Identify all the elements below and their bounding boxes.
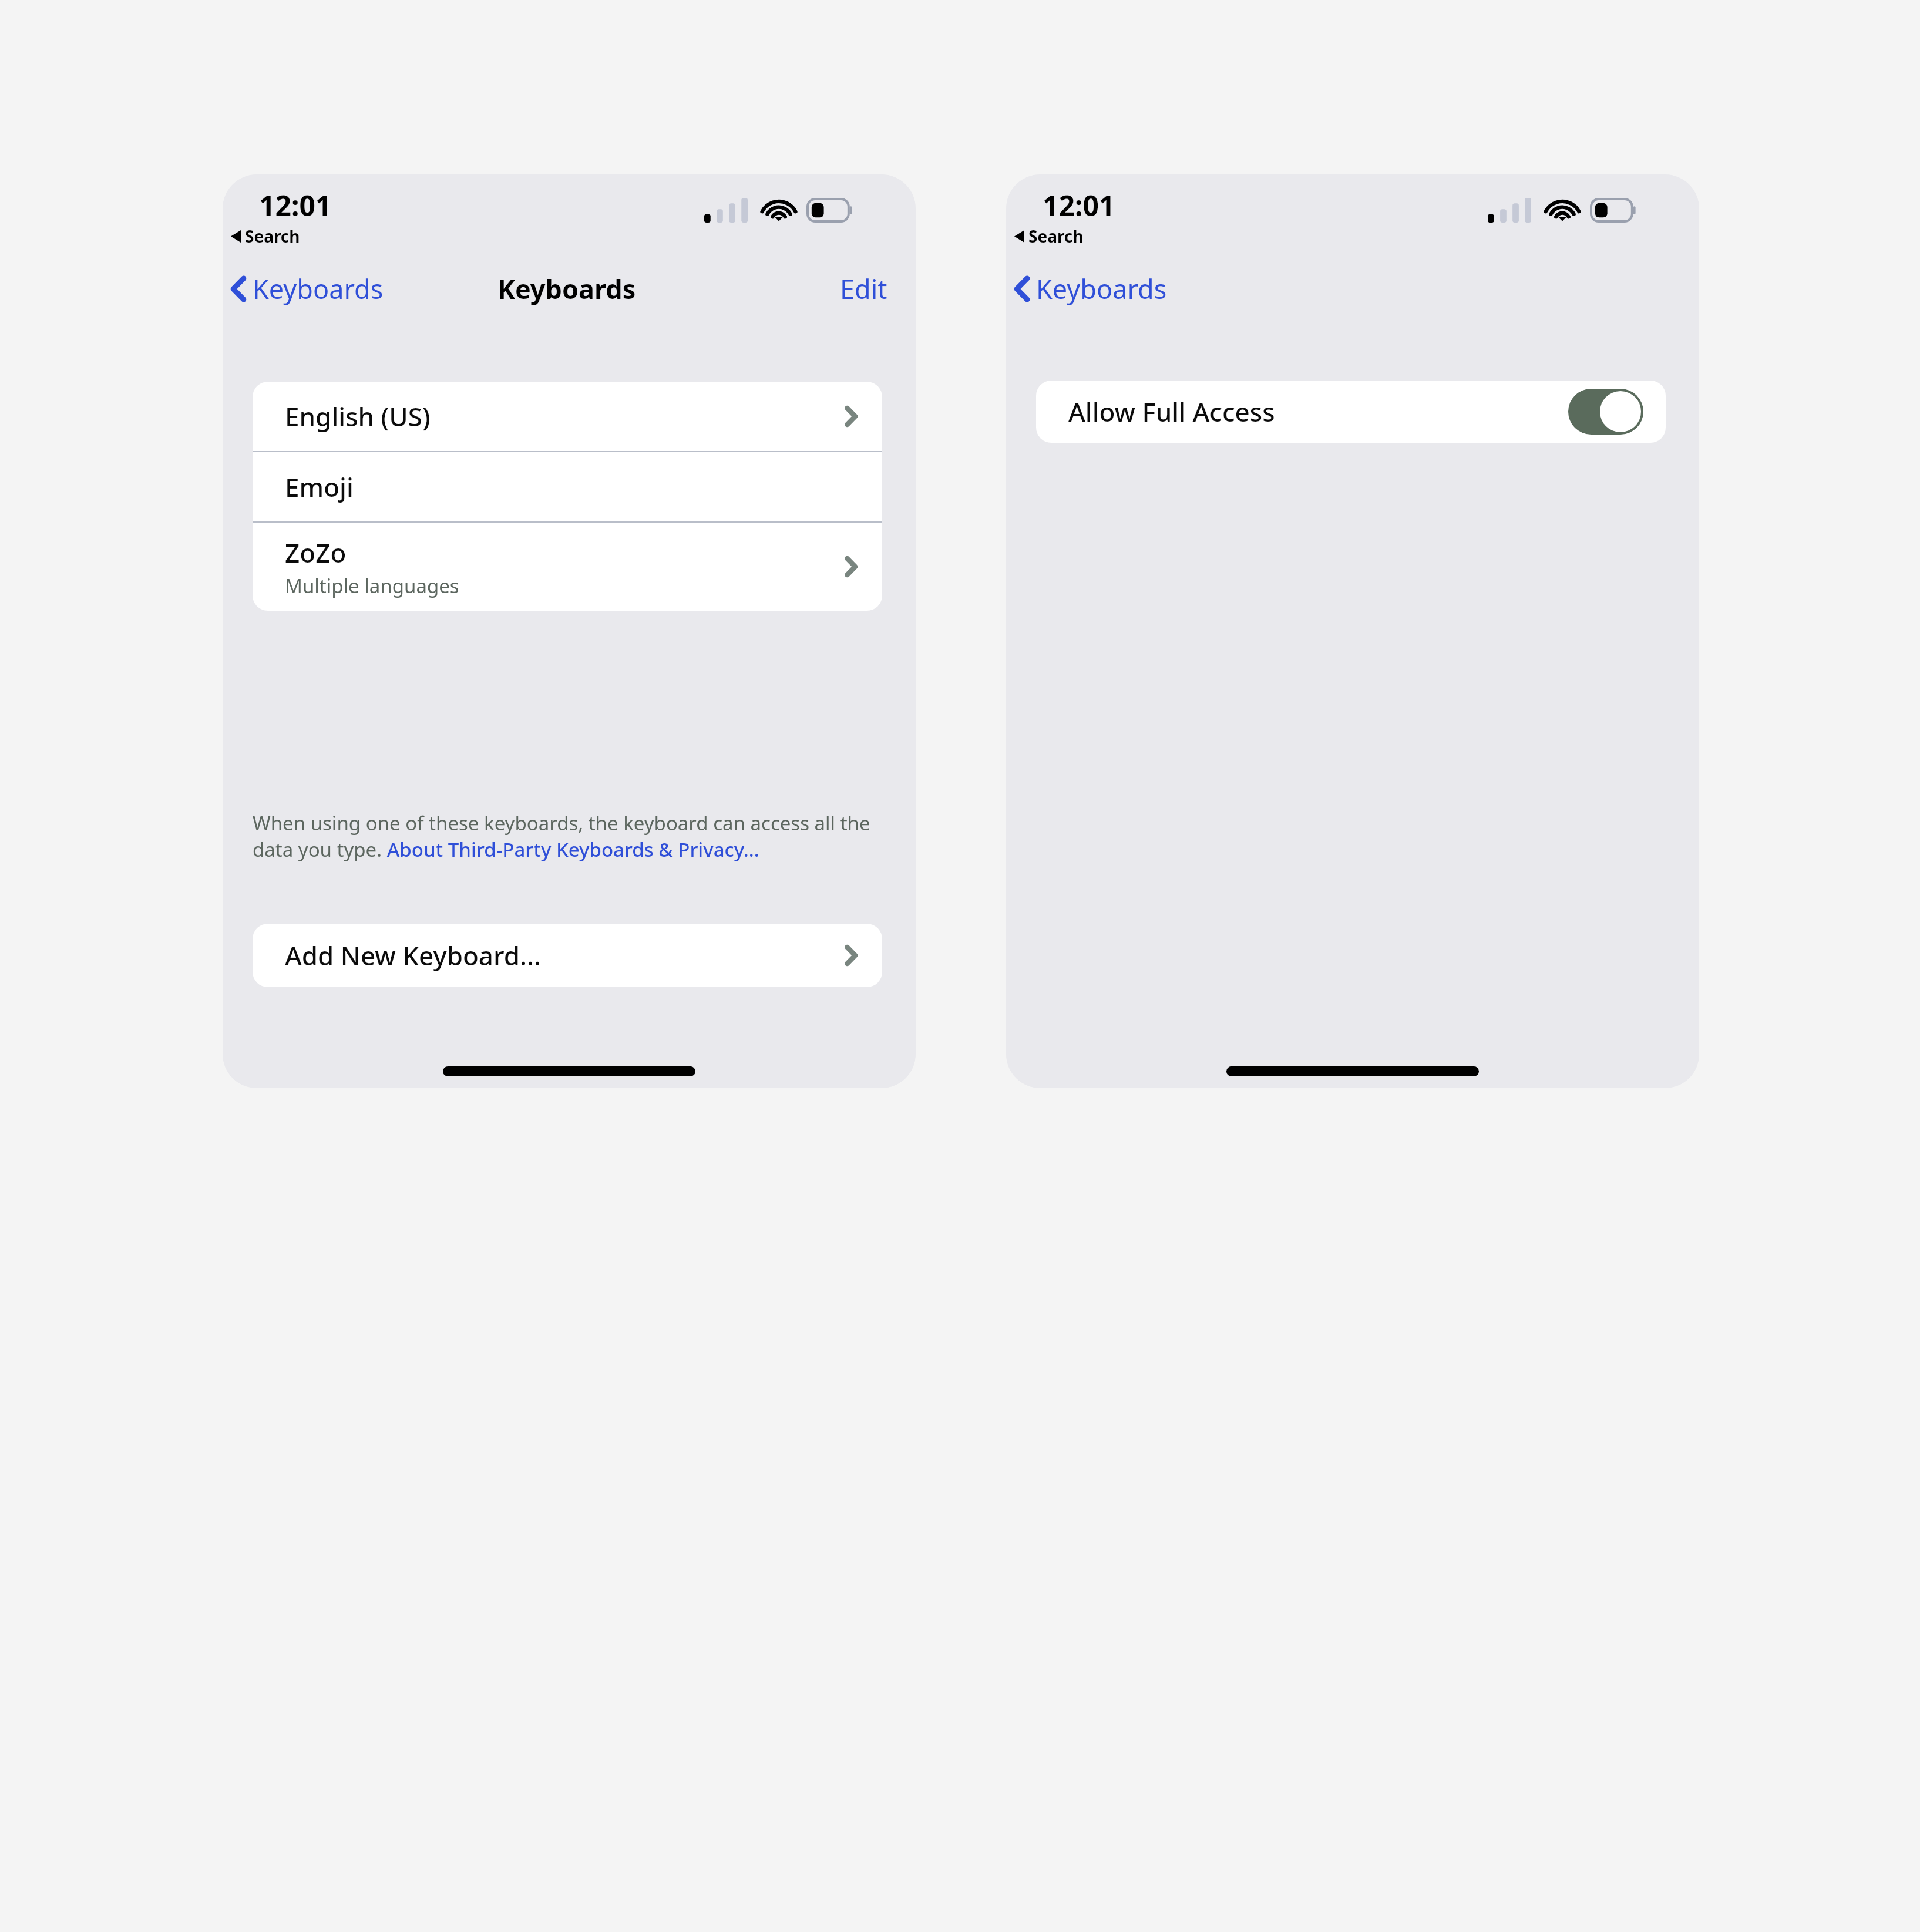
staticText: Keyboards <box>253 271 384 307</box>
staticText: Keyboards <box>1036 271 1167 307</box>
staticText: Add New Keyboard... <box>285 938 541 973</box>
staticText: Emoji <box>285 469 354 504</box>
staticText: 12:01 <box>259 186 332 224</box>
staticText: When using one of these keyboards, the k… <box>253 810 899 863</box>
staticText: Search <box>1028 225 1084 247</box>
staticText: Allow Full Access <box>1068 394 1275 429</box>
button[interactable]: Edit <box>835 266 892 311</box>
button[interactable]: Add New Keyboard... <box>253 924 882 987</box>
button[interactable]: Emoji <box>253 452 882 521</box>
button[interactable]: Allow Full Access <box>1036 381 1666 443</box>
staticText: ZoZo <box>285 535 347 570</box>
staticText: Search <box>245 225 300 247</box>
button[interactable]: Keyboards <box>1011 266 1171 311</box>
staticText: English (US) <box>285 399 431 434</box>
staticText: Edit <box>840 271 887 307</box>
button[interactable]: Keyboards <box>227 266 387 311</box>
staticText: 12:01 <box>1043 186 1115 224</box>
button[interactable]: English (US) <box>253 382 882 451</box>
button[interactable]: Allow Full Access, on <box>1568 389 1643 435</box>
staticText: Multiple languages <box>285 573 459 599</box>
staticText: Keyboards <box>497 271 636 307</box>
button[interactable]: ZoZo <box>253 523 882 611</box>
